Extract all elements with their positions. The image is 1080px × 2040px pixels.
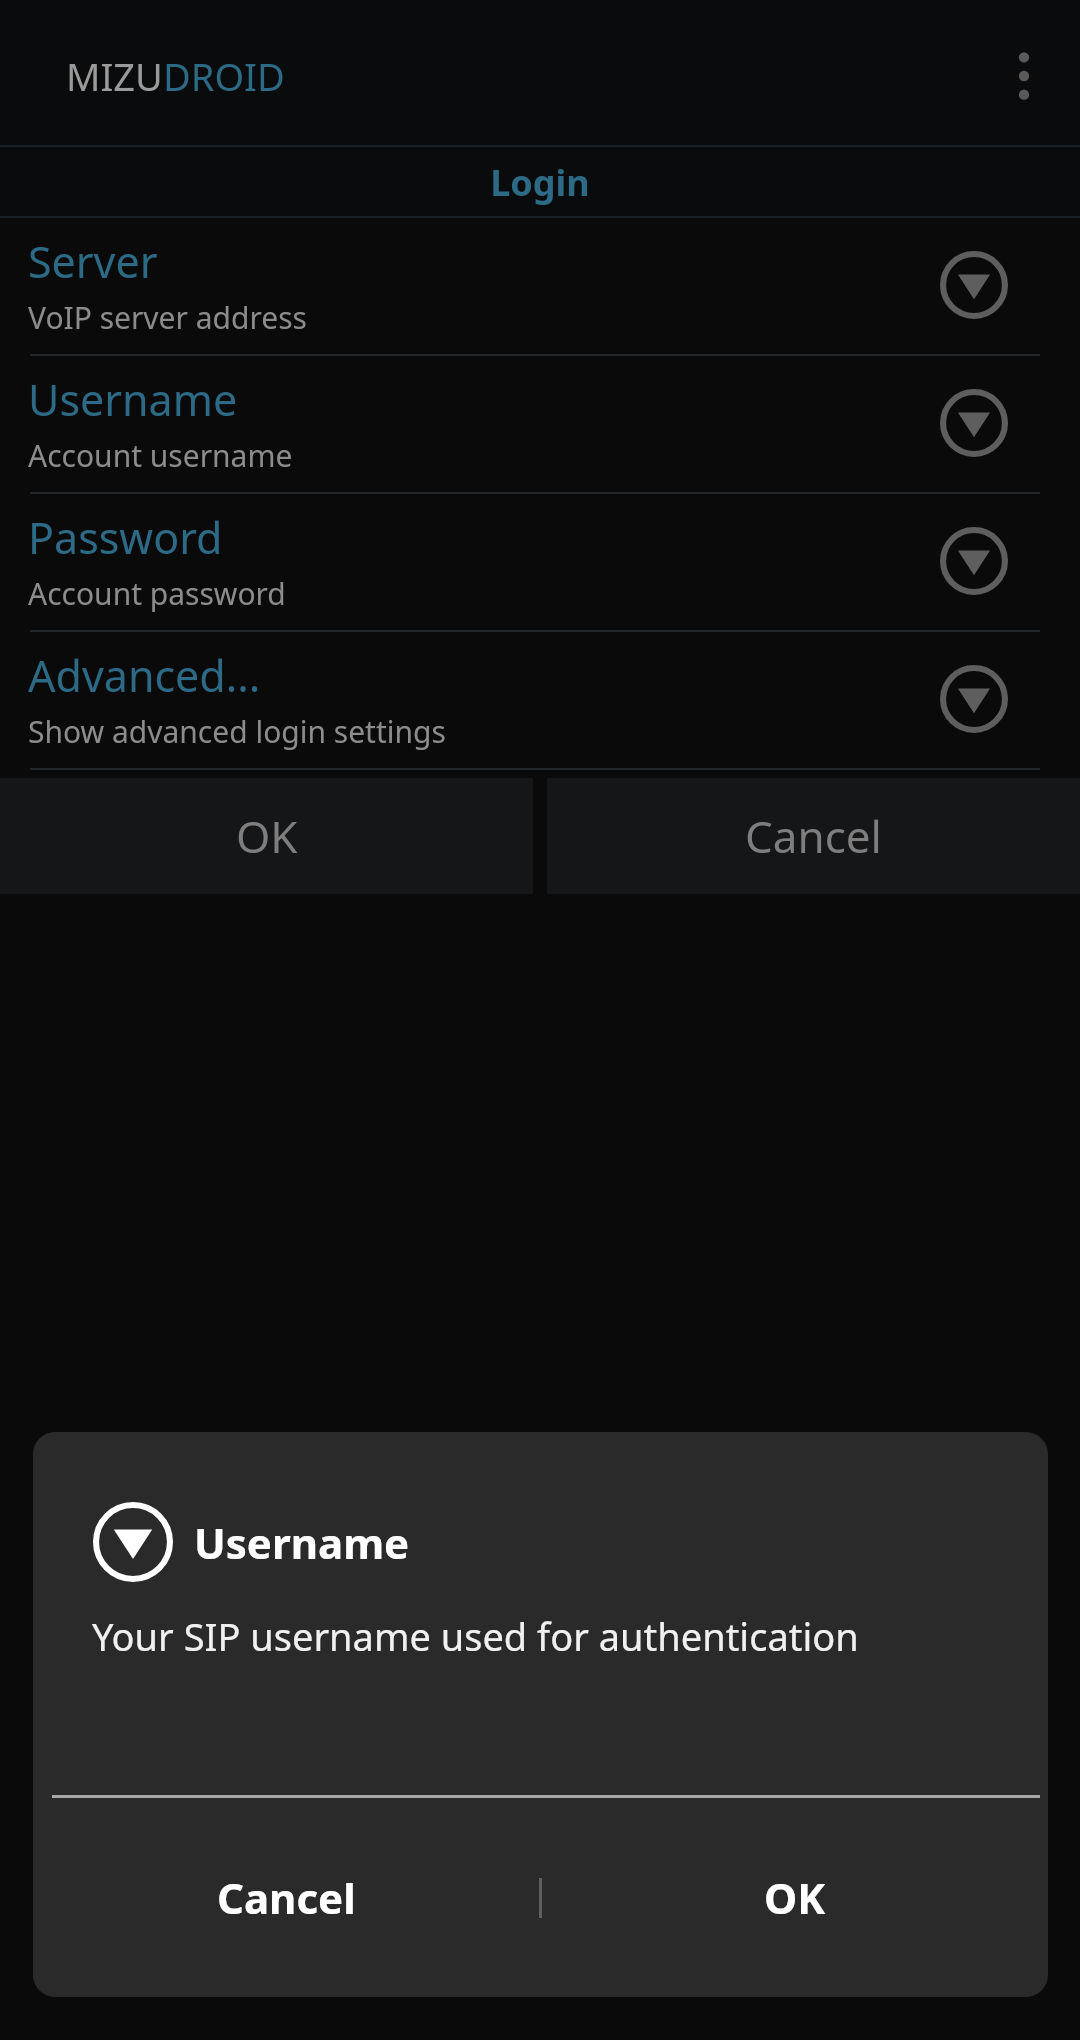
button[interactable]: Show help for Username — [930, 379, 1018, 467]
staticText: OK — [236, 806, 298, 866]
staticText: MIZU — [66, 50, 163, 102]
staticText: Show advanced login settings — [28, 711, 446, 752]
staticText: OK — [764, 1869, 826, 1926]
staticText: Login — [490, 158, 590, 207]
staticText: Advanced... — [28, 646, 261, 705]
button[interactable]: Server — [0, 218, 1080, 356]
button[interactable]: OK — [0, 778, 533, 894]
staticText: Server — [28, 232, 158, 291]
staticText: DROID — [163, 50, 285, 102]
staticText: Account username — [28, 435, 293, 476]
button[interactable]: More options — [968, 20, 1080, 132]
button[interactable]: Cancel — [33, 1798, 539, 1997]
staticText: Your SIP username used for authenticatio… — [92, 1610, 859, 1662]
staticText: Username — [28, 370, 238, 429]
staticText: Username — [194, 1514, 410, 1571]
button[interactable]: Show help for Password — [930, 517, 1018, 605]
staticText: Password — [28, 508, 223, 567]
staticText: VoIP server address — [28, 297, 307, 338]
button[interactable]: Password — [0, 494, 1080, 632]
staticText: Cancel — [217, 1869, 356, 1926]
button[interactable]: Show help for Advanced... — [930, 655, 1018, 743]
button[interactable]: Login — [0, 147, 1080, 218]
button[interactable]: Advanced... — [0, 632, 1080, 770]
button[interactable]: Username — [0, 356, 1080, 494]
staticText: Cancel — [745, 806, 882, 866]
button[interactable]: OK — [542, 1798, 1048, 1997]
staticText: Account password — [28, 573, 286, 614]
button[interactable]: Cancel — [547, 778, 1080, 894]
button[interactable]: Show help for Server — [930, 241, 1018, 329]
